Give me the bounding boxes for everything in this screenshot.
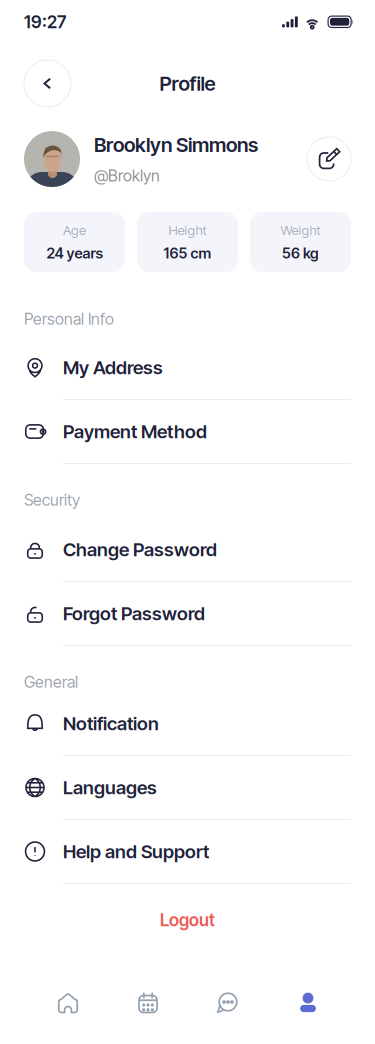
button[interactable]: Back	[24, 60, 71, 107]
button[interactable]: Notification	[0, 692, 375, 755]
button[interactable]: Change Password	[0, 518, 375, 581]
staticText: Languages	[63, 776, 157, 799]
staticText: 19:27	[24, 11, 66, 32]
button[interactable]: Forgot Password	[0, 582, 375, 645]
staticText: Security	[24, 490, 80, 510]
staticText: Weight	[280, 222, 320, 238]
button[interactable]: Edit profile	[307, 137, 351, 181]
staticText: Profile	[159, 71, 215, 96]
staticText: 24 years	[46, 244, 102, 262]
staticText: Age	[63, 222, 86, 238]
staticText: Help and Support	[63, 840, 209, 863]
button[interactable]: Home	[28, 986, 108, 1044]
staticText: Payment Method	[63, 420, 207, 443]
button[interactable]: Payment Method	[0, 400, 375, 463]
button[interactable]: Languages	[0, 756, 375, 819]
staticText: General	[24, 672, 78, 692]
staticText: Personal Info	[24, 309, 114, 329]
button[interactable]: Help and Support	[0, 820, 375, 883]
staticText: @Broklyn	[94, 166, 160, 185]
staticText: 165 cm	[163, 244, 211, 262]
staticText: Logout	[160, 909, 215, 930]
button[interactable]: Profile	[268, 986, 348, 1044]
staticText: Height	[168, 222, 206, 238]
staticText: Change Password	[63, 538, 217, 561]
button[interactable]: Messages	[188, 986, 268, 1044]
staticText: Forgot Password	[63, 602, 205, 625]
button[interactable]: Calendar	[108, 986, 188, 1044]
button[interactable]: My Address	[0, 336, 375, 399]
button[interactable]: Logout	[0, 908, 375, 932]
staticText: Notification	[63, 712, 159, 735]
staticText: Brooklyn Simmons	[94, 133, 258, 157]
staticText: My Address	[63, 356, 163, 379]
staticText: 56 kg	[282, 244, 319, 262]
